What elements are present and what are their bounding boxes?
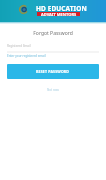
- staticText: ADVAIT MENTORS: [41, 12, 77, 16]
- other: HD Education logo: [19, 5, 28, 14]
- staticText: Not now: [47, 88, 59, 92]
- button[interactable]: RESET PASSWORD: [7, 64, 99, 79]
- staticText: Forgot Password: [0, 30, 106, 37]
- staticText: RESET PASSWORD: [36, 69, 70, 74]
- button[interactable]: Not now: [44, 87, 62, 93]
- staticText: Enter your registered email: [7, 54, 46, 58]
- staticText: HD EDUCATION: [36, 4, 87, 13]
- staticText: Registered Email: [7, 44, 31, 48]
